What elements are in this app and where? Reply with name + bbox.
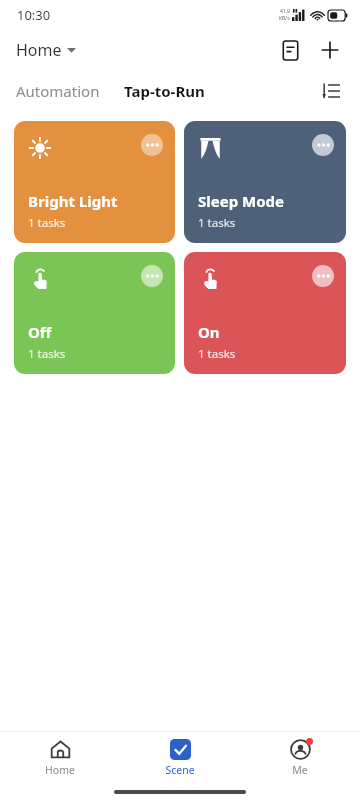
staticText: 1 tasks: [28, 215, 66, 231]
button[interactable]: More options: [14, 121, 175, 243]
button[interactable]: Tap-to-Run: [116, 75, 213, 107]
staticText: Me: [292, 763, 308, 777]
staticText: 1 tasks: [198, 215, 236, 231]
button[interactable]: Home: [0, 732, 120, 784]
button[interactable]: Automation: [8, 75, 108, 107]
staticText: Home: [45, 763, 75, 777]
staticText: 10:30: [17, 6, 51, 24]
staticText: Off: [28, 322, 52, 342]
button[interactable]: More options: [184, 252, 346, 374]
button[interactable]: Me: [240, 732, 360, 784]
staticText: 41.9: [280, 8, 290, 15]
button[interactable]: Sort: [312, 72, 350, 110]
button[interactable]: Home: [12, 35, 80, 65]
button[interactable]: Add: [310, 30, 350, 70]
staticText: KB/s: [279, 15, 290, 22]
staticText: Automation: [16, 81, 100, 101]
button[interactable]: More options: [141, 265, 163, 287]
staticText: 1 tasks: [28, 346, 66, 362]
staticText: Scene: [165, 763, 195, 777]
button[interactable]: Scene: [120, 732, 240, 784]
button[interactable]: More options: [312, 265, 334, 287]
staticText: 1 tasks: [198, 346, 236, 362]
button[interactable]: Device list: [270, 30, 310, 70]
button[interactable]: More options: [14, 252, 175, 374]
staticText: Bright Light: [28, 191, 118, 211]
button[interactable]: More options: [184, 121, 346, 243]
staticText: Sleep Mode: [198, 191, 284, 211]
staticText: Home: [16, 39, 62, 61]
button[interactable]: More options: [141, 134, 163, 156]
staticText: Tap-to-Run: [124, 81, 205, 101]
button[interactable]: More options: [312, 134, 334, 156]
staticText: On: [198, 322, 220, 342]
